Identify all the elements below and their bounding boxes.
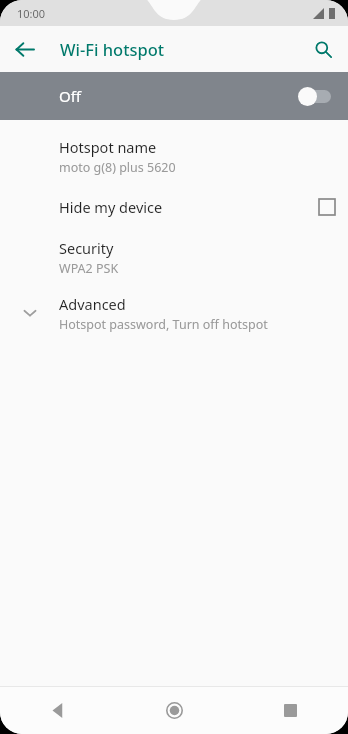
staticText: Hotspot name — [59, 137, 157, 157]
button[interactable]: Back — [0, 686, 116, 734]
button[interactable]: Hotspot name — [0, 128, 348, 184]
staticText: Security — [59, 238, 114, 258]
button[interactable]: Hide my device checkbox — [312, 192, 342, 222]
staticText: 10:00 — [17, 6, 46, 21]
button[interactable]: Search — [307, 33, 339, 65]
staticText: Hide my device — [59, 197, 163, 217]
staticText: Wi-Fi hotspot — [60, 38, 165, 60]
button[interactable]: Security — [0, 229, 348, 285]
staticText: Hotspot password, Turn off hotspot autom… — [59, 316, 305, 333]
button[interactable]: Hide my device — [0, 184, 348, 229]
button[interactable]: Back — [8, 33, 40, 65]
staticText: Advanced — [59, 294, 126, 314]
button[interactable]: Home — [116, 686, 232, 734]
staticText: WPA2 PSK — [59, 260, 119, 277]
button[interactable]: Off — [0, 72, 348, 120]
button[interactable]: Advanced — [0, 285, 348, 341]
button[interactable]: Recents — [232, 686, 348, 734]
staticText: moto g(8) plus 5620 — [59, 159, 176, 176]
staticText: Off — [59, 86, 82, 106]
